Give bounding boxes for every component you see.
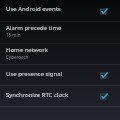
staticText: Cyberoach: [6, 54, 29, 60]
button[interactable]: Home network: [0, 44, 120, 65]
button[interactable]: Toggle setting: [98, 67, 115, 84]
staticText: 15 min: [6, 32, 21, 38]
staticText: Synchronize RTC clock: [6, 91, 69, 99]
button[interactable]: Use Android events: [0, 0, 120, 22]
button[interactable]: Use presence signal: [0, 65, 120, 86]
staticText: Alarm precede time: [6, 24, 62, 32]
staticText: Use Android events: [6, 5, 61, 13]
button[interactable]: Synchronize RTC clock: [0, 86, 120, 107]
button[interactable]: Alarm precede time: [0, 22, 120, 44]
staticText: Use presence signal: [6, 70, 63, 78]
button[interactable]: Toggle setting: [98, 3, 115, 20]
staticText: Home network: [6, 46, 48, 54]
button[interactable]: Toggle setting: [98, 88, 115, 105]
